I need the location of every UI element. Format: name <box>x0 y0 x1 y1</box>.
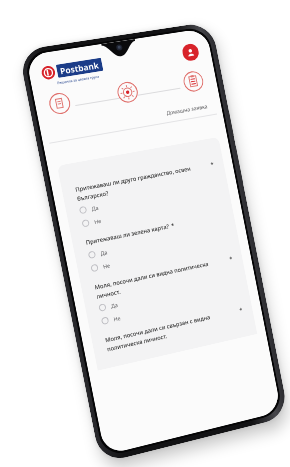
staticText: * <box>227 255 234 264</box>
staticText: Притежаваш ли друго гражданство, освен б… <box>75 161 212 202</box>
staticText: Не <box>113 314 121 322</box>
staticText: Postbank <box>59 59 100 76</box>
button[interactable]: Да <box>98 275 237 312</box>
button[interactable]: Профил <box>181 43 200 62</box>
staticText: Решения за цялата група <box>57 74 100 85</box>
button[interactable]: Да <box>88 224 227 259</box>
staticText: Притежаваш ли зелена карта? <box>85 222 171 247</box>
staticText: Да <box>100 248 108 257</box>
button[interactable]: Стъпка 1 <box>47 91 72 116</box>
staticText: * <box>169 221 175 230</box>
staticText: Да <box>110 301 119 309</box>
staticText: Да <box>91 203 99 212</box>
staticText: Моля, посочи дали си видна политическа л… <box>94 256 230 300</box>
button[interactable]: Стъпка 3 <box>181 69 205 93</box>
staticText: Домашна заявка <box>166 102 208 116</box>
button[interactable]: Да <box>79 181 219 214</box>
staticText: Не <box>93 217 102 225</box>
button[interactable]: Не <box>90 237 230 272</box>
button[interactable]: Не <box>101 288 240 325</box>
staticText: Моля, посочи дали си свързан с видна пол… <box>104 307 240 352</box>
button[interactable]: Не <box>81 194 221 227</box>
staticText: * <box>237 306 244 315</box>
button[interactable]: Стъпка 2 <box>115 80 140 105</box>
staticText: Не <box>102 261 111 270</box>
staticText: * <box>209 160 215 169</box>
